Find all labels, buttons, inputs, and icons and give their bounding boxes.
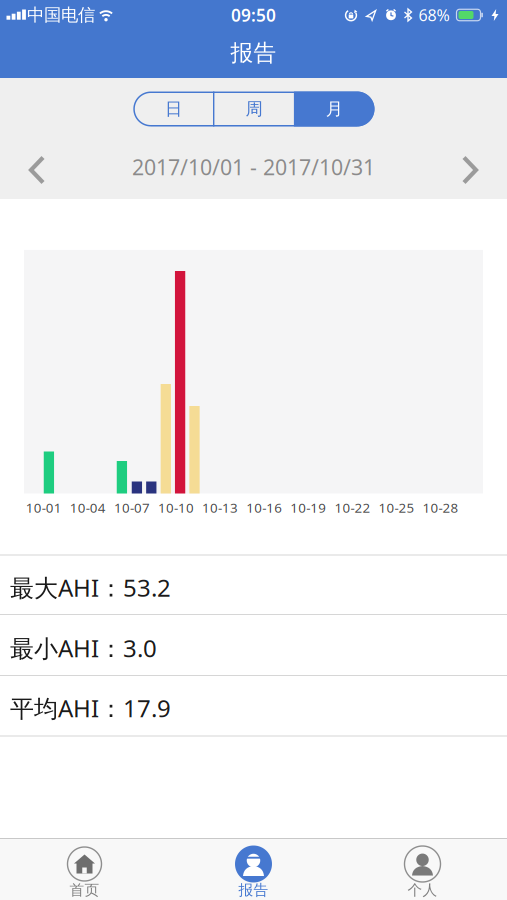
staticText: 53.2 (123, 572, 171, 603)
staticText: 2017/10/01 - 2017/10/31 (132, 153, 375, 181)
button[interactable]: 月 (295, 91, 373, 126)
staticText: 10-19 (290, 499, 326, 516)
staticText: 17.9 (123, 692, 171, 724)
button[interactable]: 报告 (169, 838, 338, 900)
staticText: 报告 (238, 881, 268, 899)
staticText: 10-16 (246, 499, 282, 516)
staticText: 68% (418, 4, 449, 26)
button[interactable]: 周 (215, 91, 293, 126)
staticText: 10-13 (202, 499, 238, 516)
button[interactable]: 个人 (338, 838, 507, 900)
staticText: 月 (326, 98, 343, 120)
button[interactable]: 首页 (0, 838, 169, 900)
staticText: 10-04 (70, 499, 106, 516)
staticText: 最小AHI： (10, 632, 123, 664)
staticText: 3.0 (123, 632, 157, 664)
button[interactable] (26, 155, 47, 185)
staticText: 首页 (69, 881, 99, 899)
staticText: 10-28 (423, 499, 459, 516)
staticText: 10-07 (114, 499, 150, 516)
staticText: 周 (245, 98, 262, 120)
staticText: 10-22 (334, 499, 370, 516)
staticText: 10-10 (158, 499, 194, 516)
staticText: 最大AHI： (10, 572, 123, 603)
staticText: 10-25 (378, 499, 414, 516)
staticText: 中国电信 (27, 4, 95, 26)
staticText: 日 (165, 98, 182, 120)
staticText: 09:50 (231, 3, 276, 26)
staticText: 平均AHI： (10, 692, 123, 724)
staticText: 10-01 (26, 499, 62, 516)
button[interactable] (459, 155, 480, 185)
button[interactable]: 日 (134, 91, 212, 126)
staticText: 个人 (407, 881, 437, 899)
staticText: 报告 (230, 39, 276, 67)
